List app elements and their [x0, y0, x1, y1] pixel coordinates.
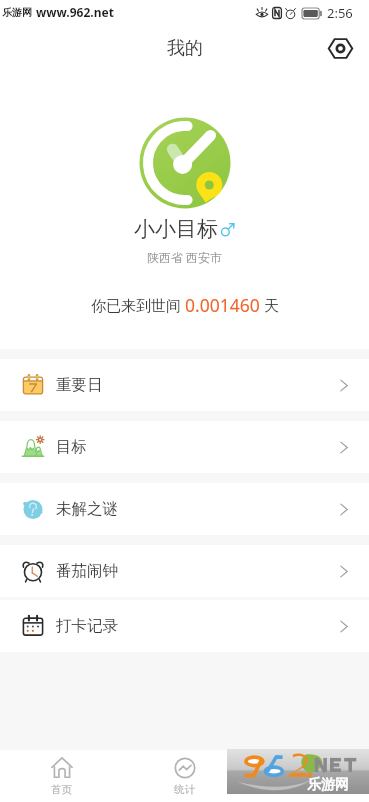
- button[interactable]: 我的: [246, 750, 369, 802]
- staticText: 统计: [174, 783, 195, 796]
- button[interactable]: 重要日: [0, 359, 369, 411]
- staticText: 天: [260, 295, 279, 315]
- button[interactable]: 首页: [0, 750, 123, 802]
- button[interactable]: Settings: [323, 31, 357, 65]
- staticText: 我的: [297, 783, 318, 796]
- staticText: 打卡记录: [56, 616, 118, 636]
- button[interactable]: 打卡记录: [0, 600, 369, 652]
- staticText: 我的: [167, 37, 203, 60]
- staticText: 小小目标: [134, 216, 218, 242]
- staticText: 番茄闹钟: [56, 561, 118, 581]
- staticText: 乐游网: [307, 776, 349, 794]
- button[interactable]: 目标: [0, 421, 369, 473]
- staticText: 2:56: [327, 4, 353, 22]
- staticText: 你已来到世间: [91, 295, 185, 315]
- button[interactable]: 番茄闹钟: [0, 545, 369, 597]
- staticText: 首页: [51, 783, 72, 796]
- staticText: 乐游网: [2, 6, 32, 19]
- staticText: 陕西省 西安市: [147, 249, 223, 265]
- staticText: 重要日: [56, 375, 103, 395]
- staticText: 0.001460: [185, 293, 260, 317]
- staticText: 目标: [56, 437, 87, 457]
- button[interactable]: 未解之谜: [0, 483, 369, 535]
- staticText: www.962.net: [36, 4, 114, 20]
- staticText: 未解之谜: [56, 499, 118, 519]
- button[interactable]: 统计: [123, 750, 246, 802]
